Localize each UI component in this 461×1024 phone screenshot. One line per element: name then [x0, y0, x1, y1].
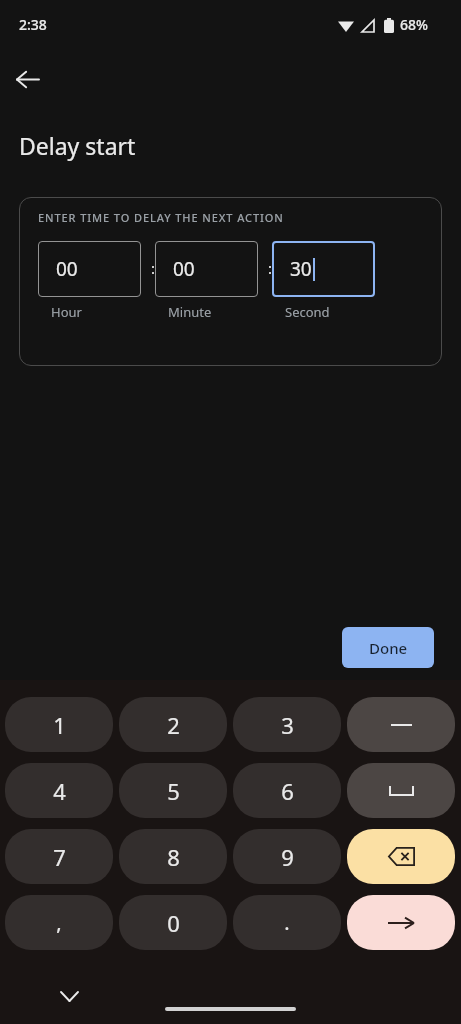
button[interactable]: Done: [342, 627, 434, 668]
staticText: 00: [173, 256, 195, 282]
staticText: 1: [53, 710, 66, 740]
staticText: 3: [281, 710, 294, 740]
staticText: 4: [53, 776, 66, 806]
button[interactable]: 4: [5, 763, 113, 818]
staticText: Second: [285, 303, 330, 321]
staticText: .: [284, 909, 290, 936]
staticText: 2: [167, 710, 180, 740]
staticText: 0: [167, 908, 180, 938]
staticText: :: [151, 258, 156, 278]
button[interactable]: ,: [5, 895, 113, 950]
staticText: 8: [167, 842, 180, 872]
button[interactable]: Dash: [347, 697, 455, 752]
staticText: 6: [281, 776, 294, 806]
button[interactable]: Space: [347, 763, 455, 818]
button[interactable]: 8: [119, 829, 227, 884]
button[interactable]: Backspace: [347, 829, 455, 884]
staticText: Delay start: [19, 130, 136, 161]
staticText: Done: [369, 638, 408, 658]
button[interactable]: 6: [233, 763, 341, 818]
staticText: ,: [56, 909, 62, 936]
staticText: 7: [53, 842, 66, 872]
button[interactable]: Back: [4, 56, 50, 102]
staticText: 9: [281, 842, 294, 872]
staticText: 00: [56, 256, 78, 282]
staticText: 2:38: [19, 15, 47, 34]
button[interactable]: 1: [5, 697, 113, 752]
staticText: 30: [290, 256, 312, 282]
button[interactable]: 7: [5, 829, 113, 884]
button[interactable]: 00: [38, 241, 141, 297]
staticText: 68%: [400, 15, 428, 34]
button[interactable]: 5: [119, 763, 227, 818]
staticText: 5: [167, 776, 180, 806]
staticText: Hour: [51, 303, 82, 321]
button[interactable]: 2: [119, 697, 227, 752]
staticText: :: [268, 258, 273, 278]
button[interactable]: 3: [233, 697, 341, 752]
button[interactable]: Hide keyboard: [48, 975, 90, 1017]
staticText: Minute: [168, 303, 212, 321]
button[interactable]: 00: [155, 241, 258, 297]
button[interactable]: 9: [233, 829, 341, 884]
button[interactable]: Enter: [347, 895, 455, 950]
button[interactable]: 0: [119, 895, 227, 950]
button[interactable]: 30: [272, 241, 375, 297]
button[interactable]: .: [233, 895, 341, 950]
staticText: ENTER TIME TO DELAY THE NEXT ACTION: [38, 210, 284, 225]
